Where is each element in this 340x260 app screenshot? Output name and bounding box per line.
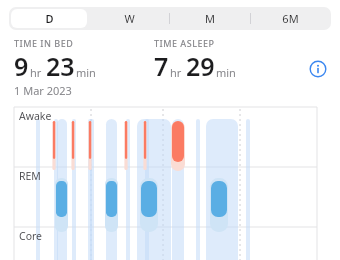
staticText: 7 [154, 49, 169, 83]
staticText: min [76, 65, 96, 80]
button[interactable]: M [169, 7, 250, 30]
button[interactable]: W [89, 7, 169, 30]
staticText: TIME IN BED [14, 37, 74, 49]
button[interactable]: 6M [250, 7, 331, 30]
staticText: 1 Mar 2023 [14, 83, 72, 98]
button[interactable]: D [9, 7, 89, 30]
staticText: W [124, 11, 135, 26]
staticText: Awake [19, 109, 52, 123]
staticText: 6M [282, 11, 299, 26]
staticText: Core [19, 229, 43, 243]
staticText: 29 [186, 49, 215, 83]
staticText: TIME ASLEEP [154, 37, 215, 49]
staticText: min [216, 65, 236, 80]
button[interactable]: More information [304, 55, 332, 83]
staticText: M [205, 11, 215, 26]
staticText: 23 [46, 49, 75, 83]
staticText: D [45, 11, 54, 26]
staticText: 9 [14, 49, 29, 83]
staticText: hr [170, 65, 182, 80]
staticText: REM [19, 169, 41, 183]
staticText: hr [30, 65, 42, 80]
